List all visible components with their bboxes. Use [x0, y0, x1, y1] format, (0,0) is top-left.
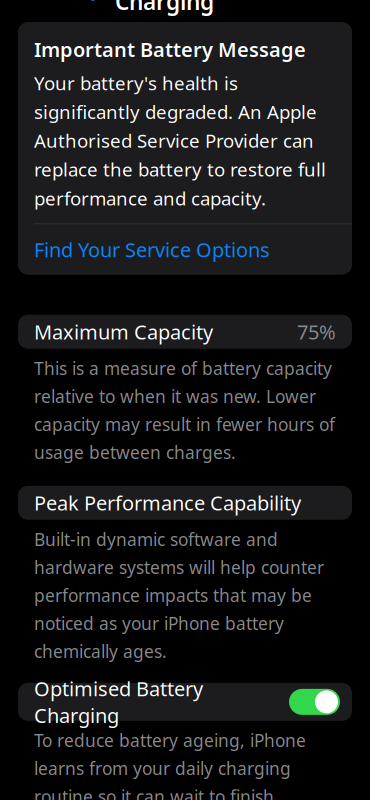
staticText: To reduce battery ageing, iPhone learns … — [34, 729, 330, 800]
button[interactable]: Optimised Battery Charging — [289, 689, 340, 715]
staticText: 75% — [297, 318, 336, 345]
button[interactable]: Peak Performance Capability — [18, 486, 352, 520]
button[interactable]: Find Your Service Options — [18, 224, 352, 275]
staticText: Optimised Battery Charging — [34, 675, 203, 728]
staticText: This is a measure of battery capacity re… — [34, 357, 335, 464]
staticText: Maximum Capacity — [34, 318, 213, 345]
staticText: Battery — [25, 0, 103, 1]
staticText: Built-in dynamic software and hardware s… — [34, 528, 324, 663]
staticText: Find Your Service Options — [34, 236, 270, 263]
button[interactable]: Battery — [0, 0, 103, 7]
staticText: Important Battery Message — [34, 36, 306, 63]
staticText: Your battery's health is significantly d… — [34, 71, 326, 211]
staticText: Battery Health & Charging — [115, 0, 297, 16]
staticText: Peak Performance Capability — [34, 489, 301, 516]
